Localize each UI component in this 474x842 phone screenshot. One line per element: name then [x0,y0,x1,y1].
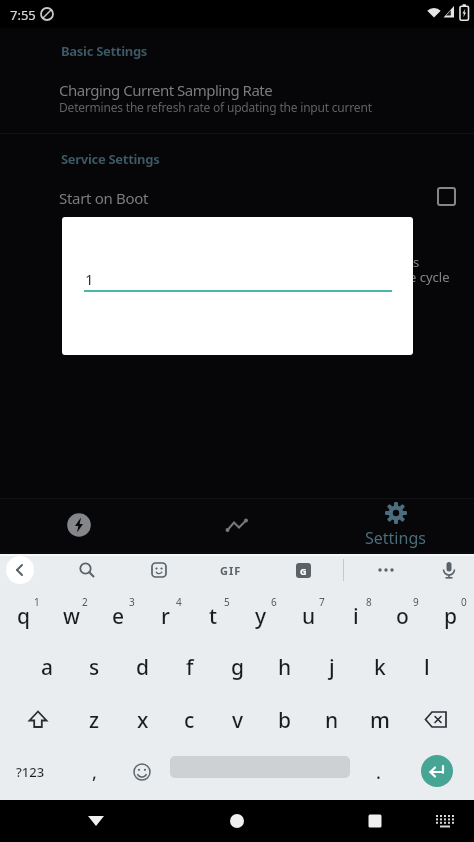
staticText: f [186,653,194,682]
button[interactable]: a [24,641,71,693]
button[interactable]: ?123 [2,746,58,798]
button[interactable]: r [142,590,189,642]
staticText: 7:55 [10,6,36,24]
staticText: n [325,706,339,735]
button[interactable] [421,755,453,787]
button[interactable]: m [356,694,403,746]
button[interactable]: , [71,746,118,798]
staticText: z [89,706,100,735]
button[interactable]: l [403,641,450,693]
staticText: b [278,706,292,735]
button[interactable]: i [332,590,379,642]
button[interactable]: b [261,694,308,746]
staticText: e [112,602,125,631]
button[interactable]: v [214,694,261,746]
staticText: p [444,602,458,631]
button[interactable]: o [379,590,426,642]
staticText: G [300,565,307,577]
button[interactable]: e [95,590,142,642]
staticText: d [136,653,150,682]
staticText: Charging Current Sampling Rate [59,80,273,100]
staticText: 9 [413,595,419,609]
staticText: c [184,706,195,735]
staticText: 4 [176,595,182,609]
staticText: 2 [82,595,88,609]
staticText: Start on Boot [59,188,149,208]
staticText: 0 [461,595,467,609]
button[interactable]: G [285,552,321,588]
button[interactable]: f [166,641,213,693]
staticText: Determines the refresh rate of updating … [59,99,372,115]
staticText: . [376,760,381,785]
button[interactable]: n [308,694,355,746]
button[interactable]: h [261,641,308,693]
staticText: t [209,602,218,631]
staticText: k [374,653,386,682]
staticText: Settings [365,527,426,549]
button[interactable]: s [71,641,118,693]
button[interactable] [408,694,464,746]
button[interactable] [425,800,465,842]
button[interactable]: u [285,590,332,642]
button[interactable] [207,498,267,552]
button[interactable] [118,746,165,798]
staticText: l [424,653,430,682]
button[interactable]: w [48,590,95,642]
button[interactable]: y [237,590,284,642]
staticText: w [63,602,80,631]
staticText: m [370,706,390,735]
staticText: 6 [271,595,277,609]
button[interactable] [368,552,404,588]
staticText: 3 [129,595,135,609]
staticText: x [137,706,149,735]
staticText: Service Settings [61,150,160,168]
staticText: 8 [366,595,372,609]
staticText: e cycle [409,268,450,286]
staticText: 5 [224,595,230,609]
staticText: ?123 [16,763,45,781]
button[interactable]: g [214,641,261,693]
button[interactable] [6,556,34,584]
staticText: g [231,653,245,682]
staticText: q [17,602,31,631]
staticText: 1 [34,595,40,609]
button[interactable] [69,552,105,588]
staticText: u [302,602,316,631]
button[interactable] [207,800,267,842]
button[interactable] [431,552,467,588]
staticText: 1 [85,269,94,289]
button[interactable]: q [0,590,47,642]
staticText: o [396,602,409,631]
staticText: , [92,760,97,785]
staticText: j [329,653,335,682]
staticText: i [353,602,359,631]
button[interactable]: d [119,641,166,693]
button[interactable] [141,552,177,588]
staticText: s [413,253,420,271]
button[interactable]: 1 [62,217,413,355]
button[interactable] [10,694,66,746]
button[interactable] [345,800,405,842]
button[interactable] [49,498,109,552]
button[interactable]: x [119,694,166,746]
button[interactable]: t [190,590,237,642]
button[interactable] [40,182,434,212]
staticText: v [232,706,244,735]
button[interactable]: z [71,694,118,746]
staticText: y [255,602,267,631]
button[interactable]: k [356,641,403,693]
button[interactable]: j [308,641,355,693]
button[interactable]: . [355,746,402,798]
button[interactable]: p [427,590,474,642]
staticText: r [161,602,170,631]
button[interactable]: GIF [213,552,249,588]
staticText: 7 [319,595,325,609]
staticText: s [89,653,100,682]
button[interactable] [66,800,126,842]
button[interactable]: c [166,694,213,746]
staticText: GIF [220,563,242,578]
button[interactable]: Settings [355,498,435,552]
staticText: a [41,653,54,682]
staticText: h [278,653,292,682]
